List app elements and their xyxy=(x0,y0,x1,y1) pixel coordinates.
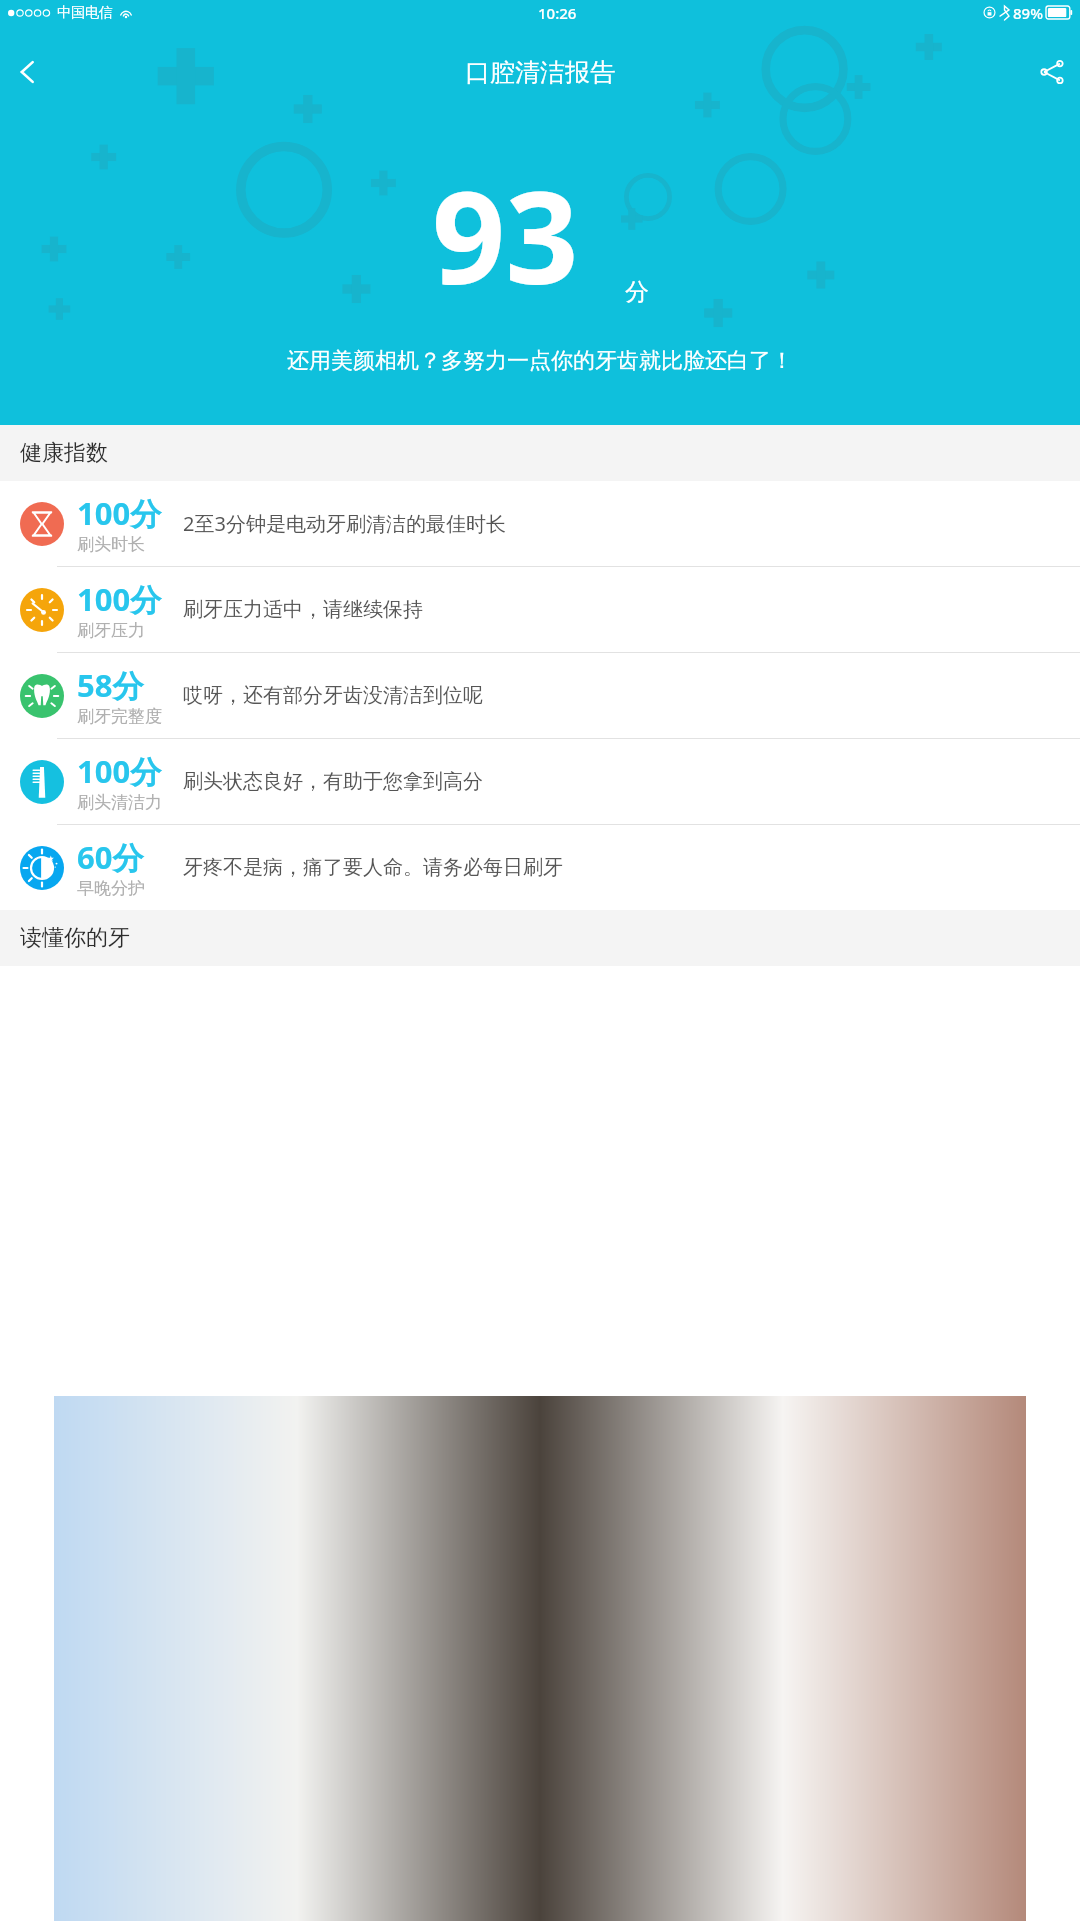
staticText: 哎呀，还有部分牙齿没清洁到位呢 xyxy=(183,683,1060,708)
staticText: 100分 xyxy=(77,492,162,534)
staticText: 10:26 xyxy=(538,3,577,23)
button[interactable]: 60分 xyxy=(0,824,1080,910)
staticText: 93 xyxy=(432,147,579,321)
staticText: 还用美颜相机？多努力一点你的牙齿就比脸还白了！ xyxy=(16,347,1064,375)
button[interactable]: Back xyxy=(0,44,56,100)
staticText: 口腔清洁报告 xyxy=(465,57,615,88)
staticText: 刷牙压力 xyxy=(77,620,145,641)
staticText: 中国电信 xyxy=(57,4,113,22)
staticText: 100分 xyxy=(77,750,162,792)
staticText: 60分 xyxy=(77,836,144,878)
staticText: 刷牙完整度 xyxy=(77,706,162,727)
button[interactable]: 100分 xyxy=(0,738,1080,824)
staticText: 分 xyxy=(625,277,649,307)
staticText: 刷头状态良好，有助于您拿到高分 xyxy=(183,769,1060,794)
staticText: 100分 xyxy=(77,578,162,620)
button[interactable] xyxy=(54,1396,1026,1921)
staticText: 2至3分钟是电动牙刷清洁的最佳时长 xyxy=(183,510,1060,537)
staticText: 58分 xyxy=(77,664,144,706)
staticText: 早晚分护 xyxy=(77,878,145,899)
staticText: 健康指数 xyxy=(20,439,108,467)
button[interactable]: Share xyxy=(1024,44,1080,100)
button[interactable]: 100分 xyxy=(0,481,1080,566)
staticText: 刷牙压力适中，请继续保持 xyxy=(183,597,1060,622)
staticText: 89% xyxy=(1013,3,1043,23)
button[interactable]: 58分 xyxy=(0,652,1080,738)
staticText: 读懂你的牙 xyxy=(20,924,130,952)
staticText: 牙疼不是病，痛了要人命。请务必每日刷牙 xyxy=(183,855,1060,880)
staticText: 刷头清洁力 xyxy=(77,792,162,813)
button[interactable]: 100分 xyxy=(0,566,1080,652)
staticText: 刷头时长 xyxy=(77,534,145,555)
